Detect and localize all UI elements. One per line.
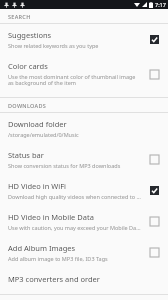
staticText: Show conversion status for MP3 downloads	[8, 162, 121, 169]
staticText: Show related keywords as you type	[8, 42, 99, 49]
button[interactable]: HD Video in Mobile Data	[0, 206, 168, 237]
staticText: Use the most dominant color of thumbnail…	[8, 73, 142, 87]
button[interactable]: Toggle Add Album Images	[148, 246, 161, 259]
staticText: Download high quality videos when connec…	[8, 193, 142, 200]
staticText: Use with caution, you may exceed your Mo…	[8, 224, 142, 231]
staticText: Status bar	[8, 150, 44, 160]
button[interactable]: Status bar	[0, 144, 168, 175]
staticText: 7:17	[155, 1, 166, 8]
staticText: /storage/emulated/0/Music	[8, 131, 79, 138]
staticText: SEARCH	[8, 13, 31, 20]
button[interactable]: MP3 converters and order	[0, 268, 168, 290]
button[interactable]: Add Album Images	[0, 237, 168, 268]
staticText: DOWNLOADS	[8, 102, 47, 109]
button[interactable]: Toggle Suggestions	[148, 33, 161, 46]
button[interactable]: Suggestions	[0, 24, 168, 55]
button[interactable]: Toggle Color cards	[148, 68, 161, 81]
button[interactable]: Download folder	[0, 113, 168, 144]
staticText: Color cards	[8, 61, 48, 71]
button[interactable]: Toggle HD Video in Mobile Data	[148, 215, 161, 228]
button[interactable]: Toggle Status bar	[148, 153, 161, 166]
staticText: Download folder	[8, 119, 67, 129]
staticText: HD Video in WiFi	[8, 181, 67, 191]
button[interactable]: HD Video in WiFi	[0, 175, 168, 206]
staticText: HD Video in Mobile Data	[8, 212, 94, 222]
staticText: Add Album Images	[8, 243, 76, 253]
staticText: MP3 converters and order	[8, 274, 100, 284]
staticText: Suggestions	[8, 30, 52, 40]
button[interactable]: Color cards	[0, 55, 168, 93]
staticText: Add album image to MP3 file, ID3 Tags	[8, 255, 108, 262]
button[interactable]: Toggle HD Video in WiFi	[148, 184, 161, 197]
